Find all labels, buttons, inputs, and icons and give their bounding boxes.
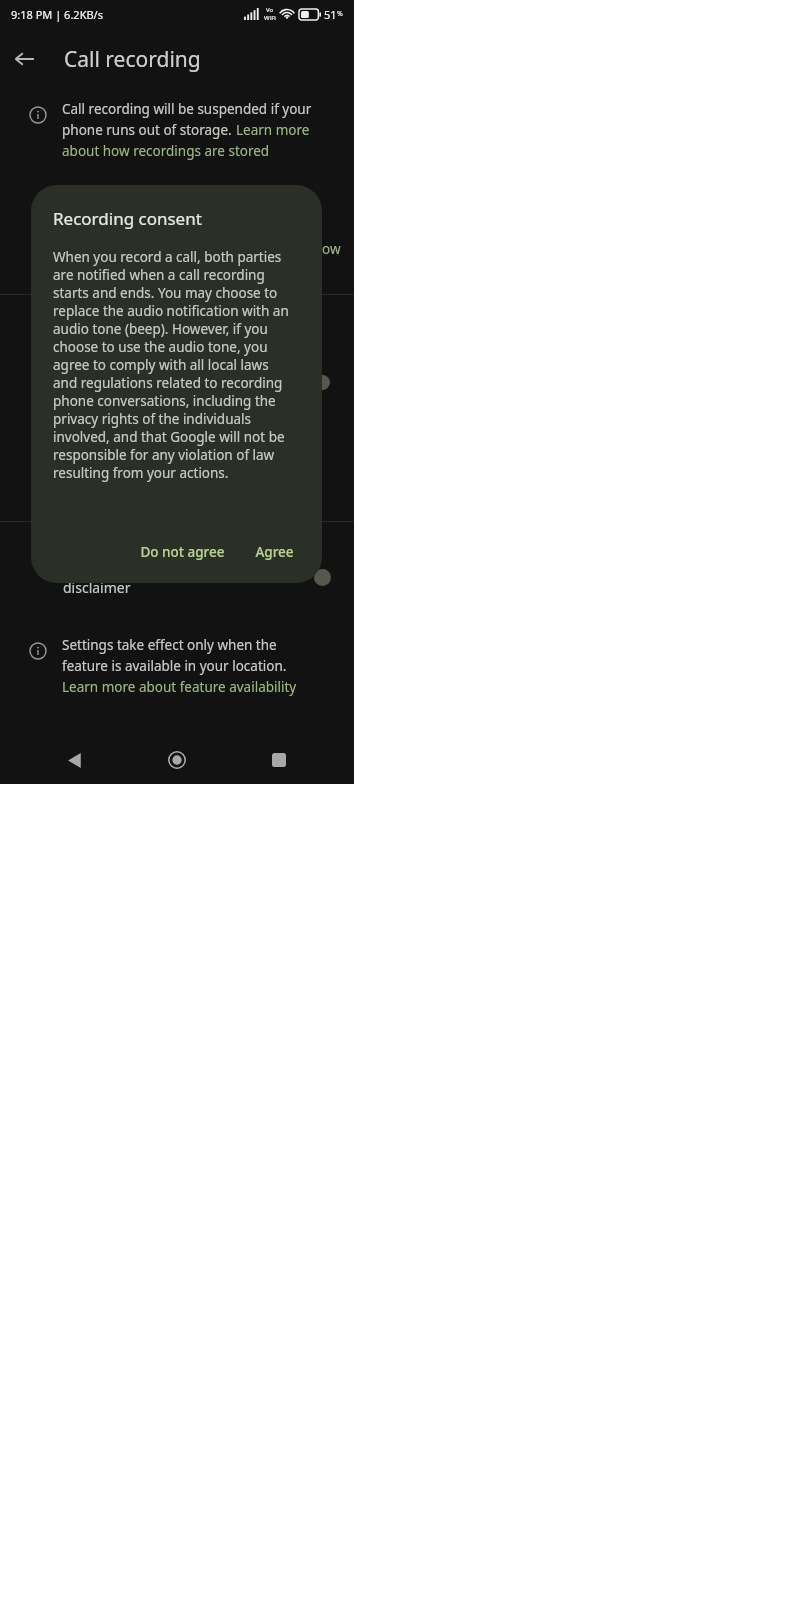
staticText: and regulations related to recording xyxy=(53,374,283,392)
staticText: starts and ends. You may choose to xyxy=(53,284,278,302)
button[interactable]: Agree xyxy=(245,535,304,569)
staticText: Call recording will be suspended if your xyxy=(62,100,312,118)
button[interactable]: Back xyxy=(0,35,48,83)
staticText: Recording consent xyxy=(53,207,202,230)
staticText: phone runs out of storage. xyxy=(62,121,236,139)
staticText: are notified when a call recording xyxy=(53,266,265,284)
staticText: replace the audio notification with an xyxy=(53,302,289,320)
staticText: WiFi xyxy=(264,14,276,22)
staticText: disclaimer xyxy=(63,578,131,597)
staticText: involved, and that Google will not be xyxy=(53,428,285,446)
staticText: audio tone (beep). However, if you xyxy=(53,320,268,338)
staticText: choose to use the audio tone, you xyxy=(53,338,268,356)
staticText: agree to comply with all local laws xyxy=(53,356,269,374)
staticText: Do not agree xyxy=(140,543,225,561)
button[interactable]: Recent apps xyxy=(255,736,303,784)
staticText: about how recordings are stored xyxy=(62,142,270,160)
staticText: ow xyxy=(322,240,341,258)
staticText: responsible for any violation of law xyxy=(53,446,275,464)
staticText: 9:18 PM | 6.2KB/s xyxy=(11,7,103,22)
button[interactable]: Back xyxy=(51,736,99,784)
staticText: Vo xyxy=(266,6,274,14)
staticText: phone conversations, including the xyxy=(53,392,276,410)
staticText: resulting from your actions. xyxy=(53,464,229,482)
button[interactable]: Do not agree xyxy=(130,535,235,569)
staticText: feature is available in your location. xyxy=(62,657,287,675)
staticText: 51 xyxy=(324,7,337,22)
staticText: Agree xyxy=(255,543,294,561)
staticText: Learn more xyxy=(236,121,310,139)
staticText: privacy rights of the individuals xyxy=(53,410,252,428)
staticText: Learn more about feature availability xyxy=(62,678,297,696)
staticText: Call recording xyxy=(64,45,201,74)
staticText: % xyxy=(337,9,343,19)
button[interactable]: Home xyxy=(153,736,201,784)
staticText: Settings take effect only when the xyxy=(62,636,277,654)
staticText: When you record a call, both parties xyxy=(53,248,282,266)
